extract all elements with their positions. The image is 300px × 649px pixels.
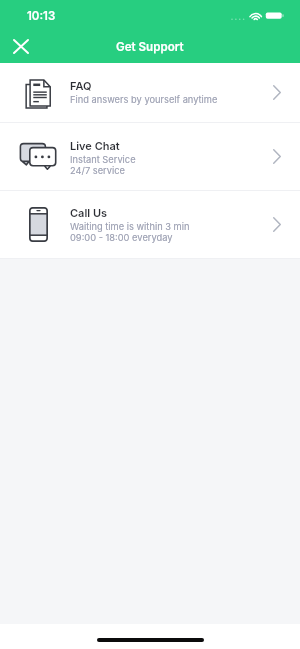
staticText: Waiting time is within 3 min: [70, 221, 190, 232]
staticText: Get Support: [116, 40, 184, 54]
staticText: Instant Service: [70, 154, 136, 165]
button[interactable]: FAQ: [0, 63, 300, 122]
staticText: Live Chat: [70, 139, 120, 154]
button[interactable]: Close: [0, 31, 42, 62]
staticText: Find answers by yourself anytime: [70, 94, 218, 105]
staticText: FAQ: [70, 79, 92, 94]
staticText: 09:00 - 18:00 everyday: [70, 232, 173, 243]
staticText: 10:13: [27, 9, 56, 23]
staticText: 24/7 service: [70, 165, 125, 176]
button[interactable]: Live Chat: [0, 123, 300, 190]
staticText: Call Us: [70, 206, 108, 221]
button[interactable]: Call Us: [0, 191, 300, 258]
